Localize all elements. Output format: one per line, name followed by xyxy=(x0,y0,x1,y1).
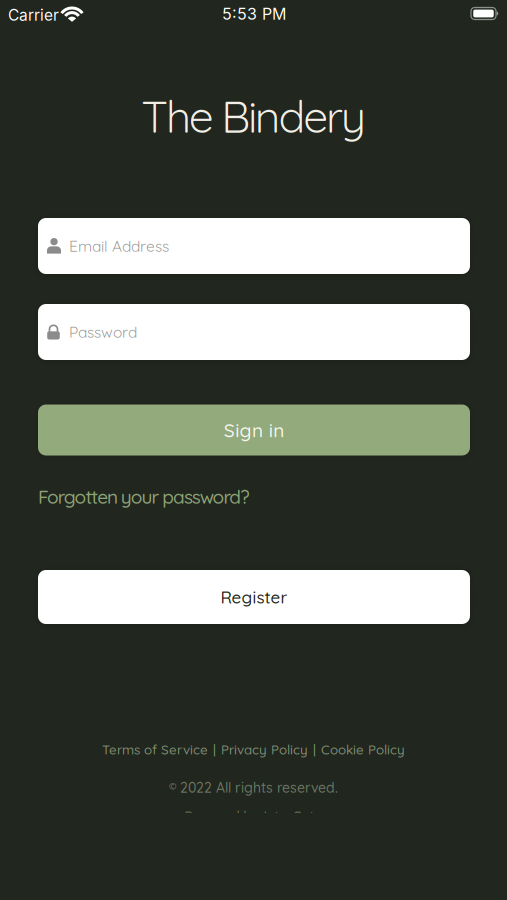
staticText: | xyxy=(213,741,216,758)
staticText: Sign in xyxy=(224,418,284,442)
button[interactable]: Terms of Service xyxy=(102,741,208,758)
staticText: 5:53 PM xyxy=(222,4,286,24)
staticText: Cookie Policy xyxy=(321,741,405,758)
staticText: Register xyxy=(220,586,287,608)
staticText: Terms of Service xyxy=(102,741,208,758)
staticText: Forgotten your password? xyxy=(38,485,249,508)
staticText: Email Address xyxy=(69,236,169,256)
staticText: Powered by InterGate xyxy=(184,807,322,824)
staticText: | xyxy=(313,741,316,758)
staticText: Privacy Policy xyxy=(221,741,308,758)
button[interactable]: Sign in xyxy=(38,404,470,455)
button[interactable]: Password xyxy=(38,304,470,360)
staticText: The Bindery xyxy=(141,88,366,144)
staticText: Password xyxy=(69,322,137,342)
staticText: © 2022 All rights reserved. xyxy=(169,779,338,796)
button[interactable]: Register xyxy=(38,570,470,624)
button[interactable]: Cookie Policy xyxy=(321,741,405,758)
button[interactable]: Forgotten your password? xyxy=(38,485,249,508)
staticText: Carrier xyxy=(8,6,59,24)
button[interactable]: Email Address xyxy=(38,218,470,274)
button[interactable]: Privacy Policy xyxy=(221,741,308,758)
